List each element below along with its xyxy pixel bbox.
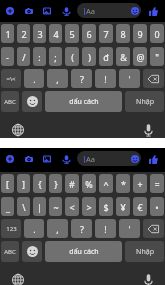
button[interactable]: *: [116, 174, 130, 193]
button[interactable]: .: [24, 69, 44, 88]
button[interactable]: |: [33, 197, 46, 216]
staticText: ,: [56, 73, 59, 85]
staticText: Nhập: [136, 247, 154, 257]
button[interactable]: €: [133, 197, 147, 216]
button[interactable]: ': [119, 69, 140, 88]
button[interactable]: \: [17, 197, 30, 216]
button[interactable]: &: [116, 47, 130, 66]
button[interactable]: Emoji: [128, 152, 142, 166]
button[interactable]: ?: [71, 219, 92, 238]
button[interactable]: Nhập: [125, 91, 164, 112]
button[interactable]: Camera: [22, 152, 36, 166]
staticText: 6: [86, 28, 92, 40]
button[interactable]: Voice message: [59, 152, 73, 166]
button[interactable]: Change language: [9, 271, 27, 285]
button[interactable]: Camera: [22, 4, 36, 18]
staticText: dấu cách: [69, 97, 99, 107]
button[interactable]: Emoji: [22, 91, 42, 112]
button[interactable]: Change language: [9, 121, 27, 139]
button[interactable]: _: [1, 197, 14, 216]
button[interactable]: Add: [3, 152, 17, 166]
button[interactable]: Voice input: [139, 271, 157, 285]
button[interactable]: ]: [17, 174, 30, 193]
button[interactable]: 6: [82, 24, 96, 43]
staticText: -: [6, 51, 9, 63]
button[interactable]: 1: [1, 24, 14, 43]
button[interactable]: 5: [65, 24, 79, 43]
button[interactable]: >: [82, 197, 96, 216]
button[interactable]: $: [99, 197, 113, 216]
button[interactable]: Add: [3, 4, 17, 18]
button[interactable]: ;: [49, 47, 62, 66]
button[interactable]: !: [95, 69, 116, 88]
button[interactable]: đ: [99, 47, 113, 66]
staticText: #: [69, 178, 75, 190]
button[interactable]: •: [150, 197, 164, 216]
button[interactable]: 4: [49, 24, 62, 43]
staticText: ?: [80, 223, 84, 235]
staticText: 4: [53, 28, 59, 40]
button[interactable]: Aa: [77, 3, 141, 18]
button[interactable]: 123: [1, 219, 21, 238]
button[interactable]: +: [133, 174, 147, 193]
button[interactable]: Gallery: [40, 152, 54, 166]
button[interactable]: 7: [99, 24, 113, 43]
button[interactable]: #: [65, 174, 79, 193]
button[interactable]: =: [150, 174, 164, 193]
button[interactable]: ): [82, 47, 96, 66]
button[interactable]: {: [33, 174, 46, 193]
button[interactable]: dấu cách: [45, 241, 122, 262]
staticText: 0: [154, 28, 160, 40]
staticText: ?: [80, 73, 84, 85]
button[interactable]: Gallery: [40, 4, 54, 18]
button[interactable]: 0: [150, 24, 164, 43]
button[interactable]: -: [1, 47, 14, 66]
staticText: =\<: [6, 75, 16, 83]
button[interactable]: ?: [71, 69, 92, 88]
button[interactable]: }: [49, 174, 62, 193]
button[interactable]: ,: [47, 69, 68, 88]
button[interactable]: ¥: [116, 197, 130, 216]
button[interactable]: :: [33, 47, 46, 66]
staticText: ~: [53, 201, 59, 213]
button[interactable]: ": [150, 47, 164, 66]
button[interactable]: ABC: [1, 241, 19, 262]
button[interactable]: ^: [99, 174, 113, 193]
staticText: {: [38, 178, 42, 190]
button[interactable]: Backspace: [143, 219, 164, 238]
button[interactable]: %: [82, 174, 96, 193]
staticText: !: [104, 223, 107, 235]
button[interactable]: Emoji: [22, 241, 42, 262]
button[interactable]: 2: [17, 24, 30, 43]
button[interactable]: Voice message: [59, 4, 73, 18]
button[interactable]: Like: [146, 4, 160, 18]
button[interactable]: 8: [116, 24, 130, 43]
button[interactable]: =\<: [1, 69, 21, 88]
button[interactable]: Emoji: [128, 4, 142, 18]
staticText: ^: [103, 178, 109, 190]
staticText: |: [37, 201, 42, 213]
button[interactable]: (: [65, 47, 79, 66]
button[interactable]: Backspace: [143, 69, 164, 88]
button[interactable]: [: [1, 174, 14, 193]
button[interactable]: 9: [133, 24, 147, 43]
button[interactable]: ': [119, 219, 140, 238]
button[interactable]: Aa: [77, 151, 141, 166]
button[interactable]: Like: [146, 152, 160, 166]
button[interactable]: 3: [33, 24, 46, 43]
button[interactable]: ~: [49, 197, 62, 216]
staticText: *: [121, 178, 126, 190]
button[interactable]: ABC: [1, 91, 19, 112]
button[interactable]: .: [24, 219, 44, 238]
staticText: 2: [21, 28, 27, 40]
button[interactable]: Voice input: [139, 121, 157, 139]
button[interactable]: ,: [47, 219, 68, 238]
button[interactable]: @: [133, 47, 147, 66]
staticText: %: [85, 178, 93, 190]
staticText: &: [120, 51, 127, 63]
button[interactable]: dấu cách: [45, 91, 122, 112]
button[interactable]: /: [17, 47, 30, 66]
button[interactable]: !: [95, 219, 116, 238]
button[interactable]: Nhập: [125, 241, 164, 262]
button[interactable]: <: [65, 197, 79, 216]
